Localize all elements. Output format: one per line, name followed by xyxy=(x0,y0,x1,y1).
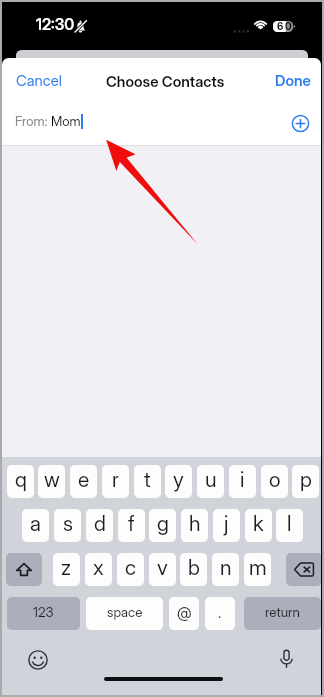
button[interactable]: s xyxy=(54,509,81,542)
staticText: u xyxy=(205,467,217,492)
staticText: p xyxy=(300,467,312,492)
button[interactable]: k xyxy=(245,509,272,542)
staticText: x xyxy=(93,555,104,580)
button[interactable]: Shift xyxy=(6,553,42,586)
staticText: r xyxy=(112,467,119,492)
staticText: c xyxy=(125,555,136,580)
staticText: Cancel xyxy=(16,71,62,89)
button[interactable]: d xyxy=(86,509,113,542)
button[interactable]: w xyxy=(38,465,65,498)
button[interactable]: q xyxy=(7,465,34,498)
button[interactable]: j xyxy=(213,509,240,542)
staticText: Done xyxy=(275,71,311,89)
button[interactable]: 123 xyxy=(7,597,80,630)
staticText: y xyxy=(173,467,184,492)
button[interactable]: h xyxy=(181,509,208,542)
button[interactable]: y xyxy=(165,465,192,498)
staticText: 12:30 xyxy=(36,15,75,34)
button[interactable]: u xyxy=(197,465,224,498)
button[interactable]: v xyxy=(149,553,176,586)
button[interactable]: Cancel xyxy=(10,63,68,94)
button[interactable]: i xyxy=(229,465,256,498)
staticText: v xyxy=(157,555,168,580)
button[interactable]: z xyxy=(53,553,80,586)
staticText: 123 xyxy=(33,604,54,620)
button[interactable]: space xyxy=(86,597,163,630)
staticText: 60 xyxy=(277,20,294,31)
button[interactable]: n xyxy=(212,553,239,586)
staticText: b xyxy=(188,555,200,580)
staticText: e xyxy=(78,467,90,492)
button[interactable]: m xyxy=(244,553,271,586)
staticText: k xyxy=(253,511,264,536)
staticText: w xyxy=(44,467,60,492)
button[interactable]: x xyxy=(85,553,112,586)
button[interactable]: b xyxy=(180,553,207,586)
staticText: Choose Contacts xyxy=(106,72,225,90)
button[interactable]: f xyxy=(118,509,145,542)
button[interactable]: c xyxy=(117,553,144,586)
staticText: Mom xyxy=(51,113,81,129)
button[interactable]: l xyxy=(276,509,303,542)
button[interactable]: p xyxy=(292,465,319,498)
button[interactable]: t xyxy=(134,465,161,498)
button[interactable]: Done xyxy=(267,63,319,94)
staticText: l xyxy=(287,511,292,536)
button[interactable]: Emoji keyboard xyxy=(28,650,48,670)
button[interactable]: Add contact xyxy=(290,113,311,134)
staticText: o xyxy=(269,467,281,492)
staticText: q xyxy=(15,467,27,492)
staticText: g xyxy=(157,511,169,536)
button[interactable]: Backspace xyxy=(286,553,321,586)
staticText: j xyxy=(224,511,229,536)
staticText: s xyxy=(63,511,73,536)
staticText: t xyxy=(144,467,151,492)
staticText: d xyxy=(94,511,106,536)
staticText: a xyxy=(30,511,41,536)
staticText: . xyxy=(218,603,222,621)
button[interactable]: e xyxy=(70,465,97,498)
button[interactable]: a xyxy=(22,509,49,542)
staticText: From: xyxy=(15,113,51,129)
staticText: i xyxy=(240,467,245,492)
button[interactable]: r xyxy=(102,465,129,498)
staticText: h xyxy=(189,511,201,536)
staticText: return xyxy=(265,604,300,620)
staticText: @ xyxy=(177,603,192,621)
staticText: z xyxy=(61,555,72,580)
staticText: n xyxy=(220,555,232,580)
button[interactable]: Dictation xyxy=(279,648,294,670)
staticText: m xyxy=(249,555,267,580)
button[interactable]: g xyxy=(149,509,176,542)
staticText: f xyxy=(128,511,135,536)
button[interactable]: return xyxy=(244,597,321,630)
button[interactable]: o xyxy=(261,465,288,498)
button[interactable]: . xyxy=(205,597,235,630)
staticText: space xyxy=(107,604,143,620)
button[interactable]: @ xyxy=(169,597,199,630)
